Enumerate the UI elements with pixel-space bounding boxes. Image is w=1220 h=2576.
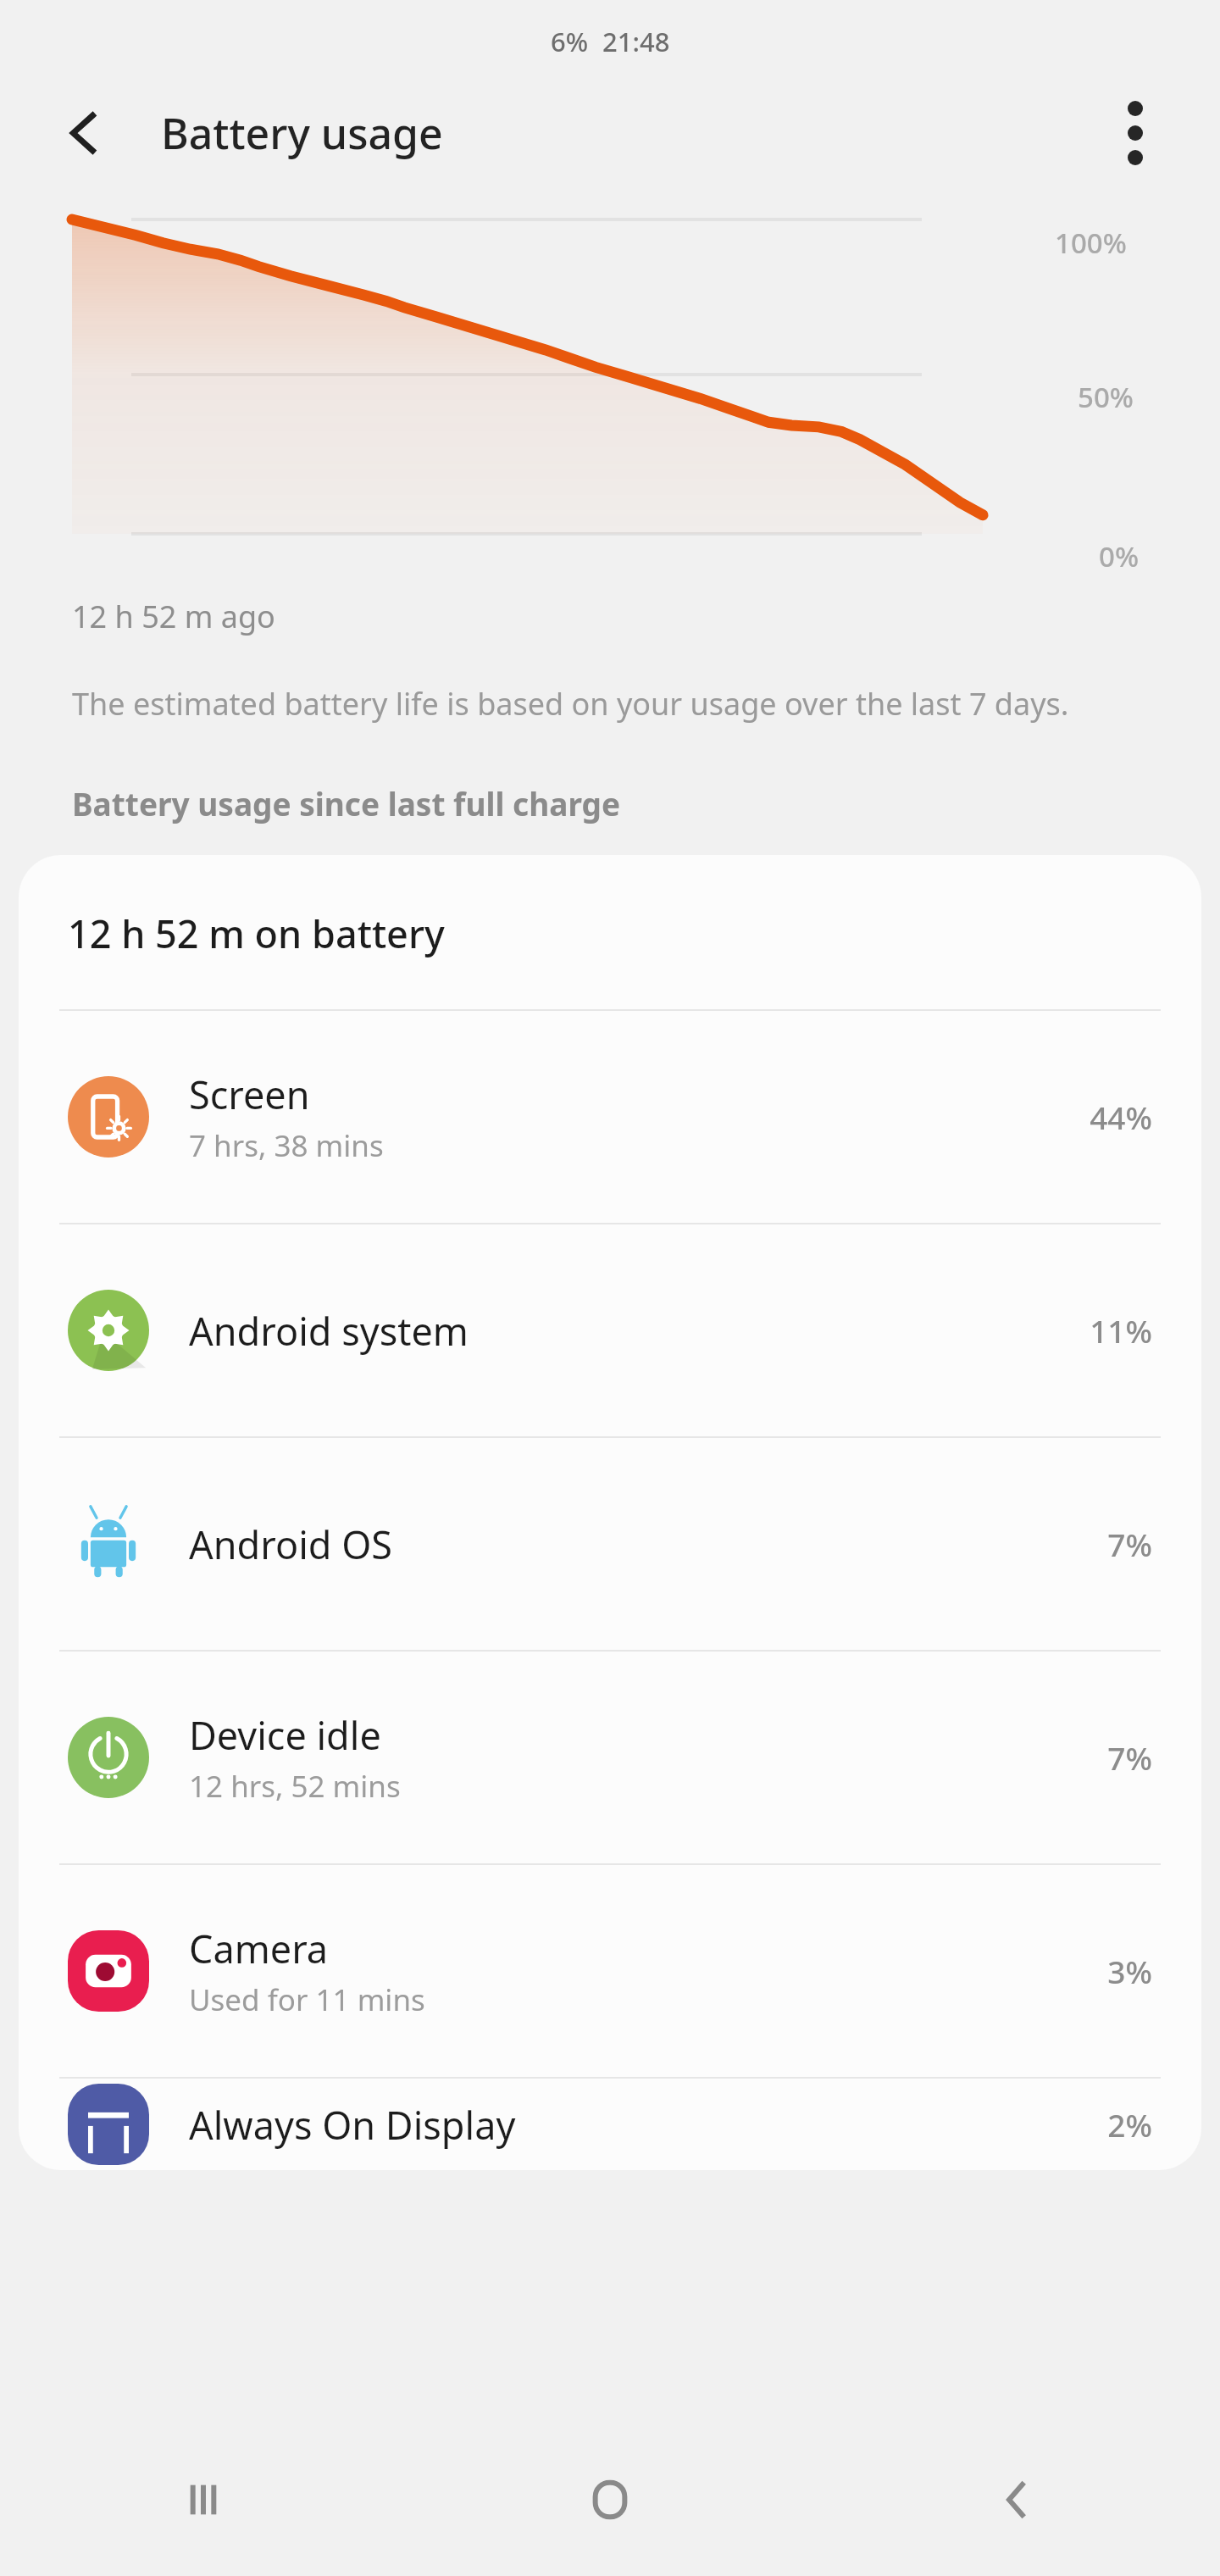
- staticText: 3%: [1107, 1950, 1152, 1992]
- staticText: 12 hrs, 52 mins: [189, 1766, 401, 1807]
- staticText: 7%: [1107, 1523, 1152, 1565]
- staticText: Android system: [189, 1305, 469, 1357]
- button[interactable]: Back: [53, 102, 115, 164]
- staticText: 6%: [551, 24, 589, 59]
- button[interactable]: Back: [813, 2423, 1220, 2576]
- staticText: 11%: [1090, 1309, 1152, 1352]
- staticText: 100%: [1055, 224, 1127, 262]
- staticText: 44%: [1090, 1096, 1152, 1138]
- staticText: 0%: [1099, 537, 1139, 575]
- staticText: The estimated battery life is based on y…: [72, 683, 1069, 724]
- button[interactable]: Home: [407, 2423, 813, 2576]
- staticText: Battery usage since last full charge: [72, 782, 621, 824]
- button[interactable]: Android system: [19, 1224, 1201, 1436]
- staticText: 50%: [1078, 378, 1134, 416]
- button[interactable]: Recents: [0, 2423, 407, 2576]
- staticText: 21:48: [602, 24, 670, 59]
- staticText: Device idle: [189, 1709, 381, 1761]
- staticText: Android OS: [189, 1518, 392, 1570]
- staticText: 7 hrs, 38 mins: [189, 1125, 384, 1166]
- button[interactable]: Device idle: [19, 1652, 1201, 1863]
- staticText: Battery usage: [161, 104, 443, 162]
- staticText: 2%: [1107, 2103, 1152, 2146]
- button[interactable]: Android OS: [19, 1438, 1201, 1650]
- button[interactable]: Camera: [19, 1865, 1201, 2077]
- staticText: Camera: [189, 1923, 329, 1974]
- staticText: Screen: [189, 1069, 310, 1120]
- button[interactable]: More options: [1101, 99, 1169, 167]
- button[interactable]: Screen: [19, 1011, 1201, 1223]
- staticText: Always On Display: [189, 2099, 516, 2151]
- staticText: 12 h 52 m on battery: [68, 908, 445, 959]
- staticText: 7%: [1107, 1736, 1152, 1779]
- button[interactable]: Always On Display: [19, 2079, 1201, 2170]
- staticText: 12 h 52 m ago: [72, 596, 275, 637]
- staticText: Used for 11 mins: [189, 1979, 425, 2020]
